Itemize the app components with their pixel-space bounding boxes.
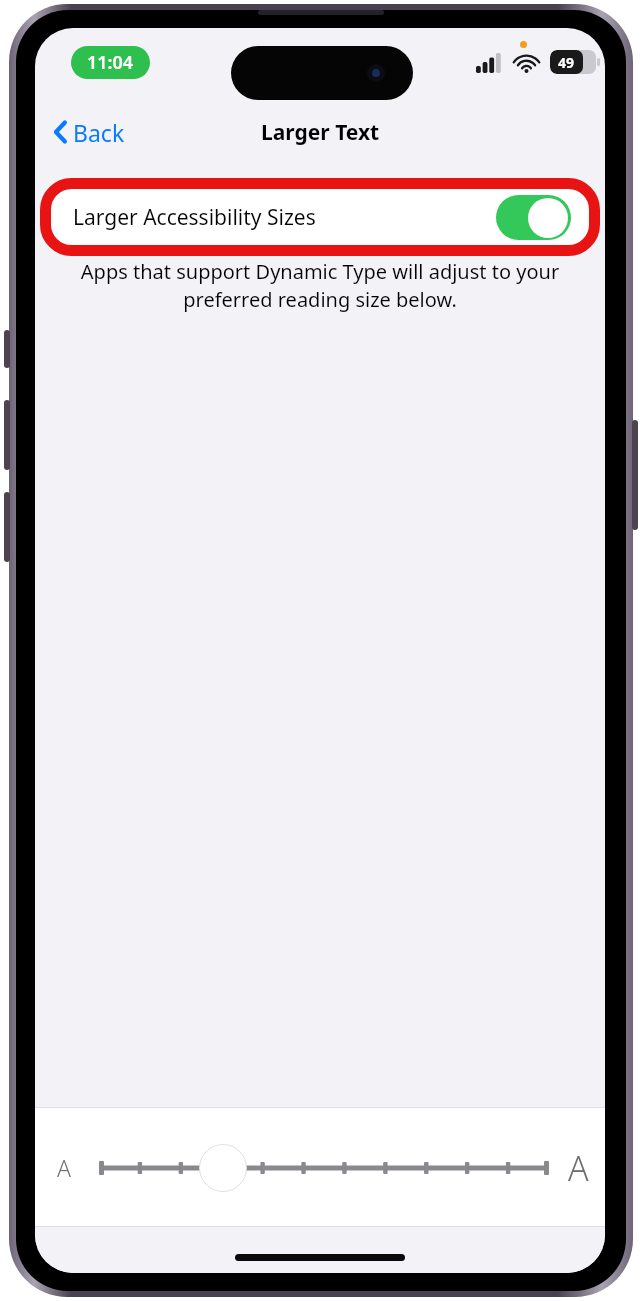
staticText: A [57, 1152, 71, 1183]
button[interactable]: Larger Accessibility Sizes toggle, on [496, 195, 571, 240]
staticText: A [568, 1145, 589, 1191]
button[interactable]: Text size slider [99, 1138, 549, 1198]
staticText: Back [73, 117, 125, 148]
staticText: Apps that support Dynamic Type will adju… [75, 258, 565, 313]
button[interactable]: Back [45, 110, 137, 154]
button[interactable]: Larger Accessibility Sizes [48, 186, 592, 248]
staticText: 49 [558, 53, 575, 72]
staticText: 11:04 [87, 50, 134, 75]
staticText: Larger Text [261, 118, 380, 147]
staticText: Larger Accessibility Sizes [73, 203, 316, 232]
